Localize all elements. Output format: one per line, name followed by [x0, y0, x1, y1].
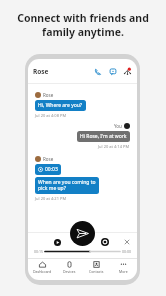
- staticText: Jul 20 at 4:14 PM: [98, 144, 130, 149]
- staticText: Rose: [43, 156, 54, 162]
- button[interactable]: More: [110, 259, 137, 276]
- button[interactable]: Play: [54, 239, 61, 246]
- staticText: family anytime.: [42, 25, 124, 39]
- staticText: Rose: [33, 67, 49, 76]
- staticText: Hi Rose, I'm at work: [80, 133, 127, 140]
- staticText: Contacts: [89, 269, 104, 274]
- button[interactable]: Send: [70, 221, 95, 246]
- button[interactable]: 00:03: [35, 164, 61, 175]
- staticText: More: [119, 269, 128, 274]
- button[interactable]: Dashboard: [28, 259, 56, 276]
- staticText: Hi, Where are you?: [38, 102, 83, 109]
- button[interactable]: Close: [123, 238, 131, 246]
- staticText: 00:03: [45, 166, 58, 173]
- button[interactable]: Notifications: [122, 66, 133, 77]
- button[interactable]: Call: [92, 66, 103, 77]
- button[interactable]: Hi, Where are you?: [35, 100, 86, 111]
- button[interactable]: Devices: [56, 259, 83, 276]
- staticText: 00:15: [34, 249, 43, 254]
- button[interactable]: Record: [101, 238, 109, 246]
- staticText: Devices: [63, 269, 76, 274]
- button[interactable]: Hi Rose, I'm at work: [77, 131, 130, 142]
- button[interactable]: Contacts: [83, 259, 110, 276]
- staticText: When are you coming to pick me up?: [38, 179, 96, 192]
- staticText: Jul 20 at 4:08 PM: [35, 113, 67, 118]
- staticText: Jul 20 at 4:21 PM: [35, 196, 67, 201]
- staticText: Dashboard: [33, 269, 52, 274]
- staticText: Rose: [43, 92, 54, 98]
- button[interactable]: Message: [107, 66, 118, 77]
- staticText: Connect with friends and: [17, 11, 149, 25]
- staticText: You: [114, 123, 122, 129]
- staticText: 00:00: [122, 249, 131, 254]
